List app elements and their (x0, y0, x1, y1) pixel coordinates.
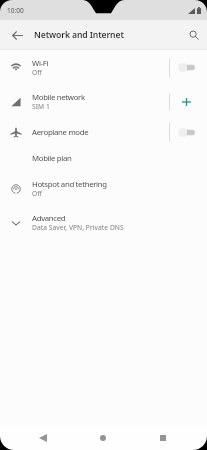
staticText: Off (32, 68, 42, 77)
button[interactable]: Home (88, 426, 118, 450)
staticText: Aeroplane mode (32, 127, 89, 138)
button[interactable]: Back (28, 426, 58, 450)
button[interactable]: Toggle (178, 127, 195, 138)
button[interactable]: Back (0, 20, 34, 50)
staticText: Mobile plan (32, 153, 72, 164)
button[interactable]: Wi-Fi (0, 50, 207, 85)
staticText: Network and Internet (34, 29, 181, 41)
button[interactable]: Toggle (178, 62, 195, 73)
staticText: Mobile network (32, 92, 85, 103)
button[interactable]: Mobile network (0, 85, 207, 119)
staticText: SIM 1 (32, 102, 50, 111)
staticText: Wi-Fi (32, 58, 49, 69)
button[interactable]: Search (181, 20, 207, 50)
staticText: Off (32, 189, 42, 198)
button[interactable]: Add (176, 92, 196, 112)
staticText: Data Saver, VPN, Private DNS (32, 223, 124, 232)
staticText: Hotspot and tethering (32, 179, 107, 190)
button[interactable]: Aeroplane mode (0, 119, 207, 145)
button[interactable]: Advanced (0, 206, 207, 240)
staticText: 10:00 (7, 6, 24, 15)
button[interactable]: Hotspot and tethering (0, 172, 207, 206)
button[interactable]: Recents (148, 426, 178, 450)
button[interactable]: Mobile plan (0, 145, 207, 172)
staticText: Advanced (32, 213, 66, 224)
